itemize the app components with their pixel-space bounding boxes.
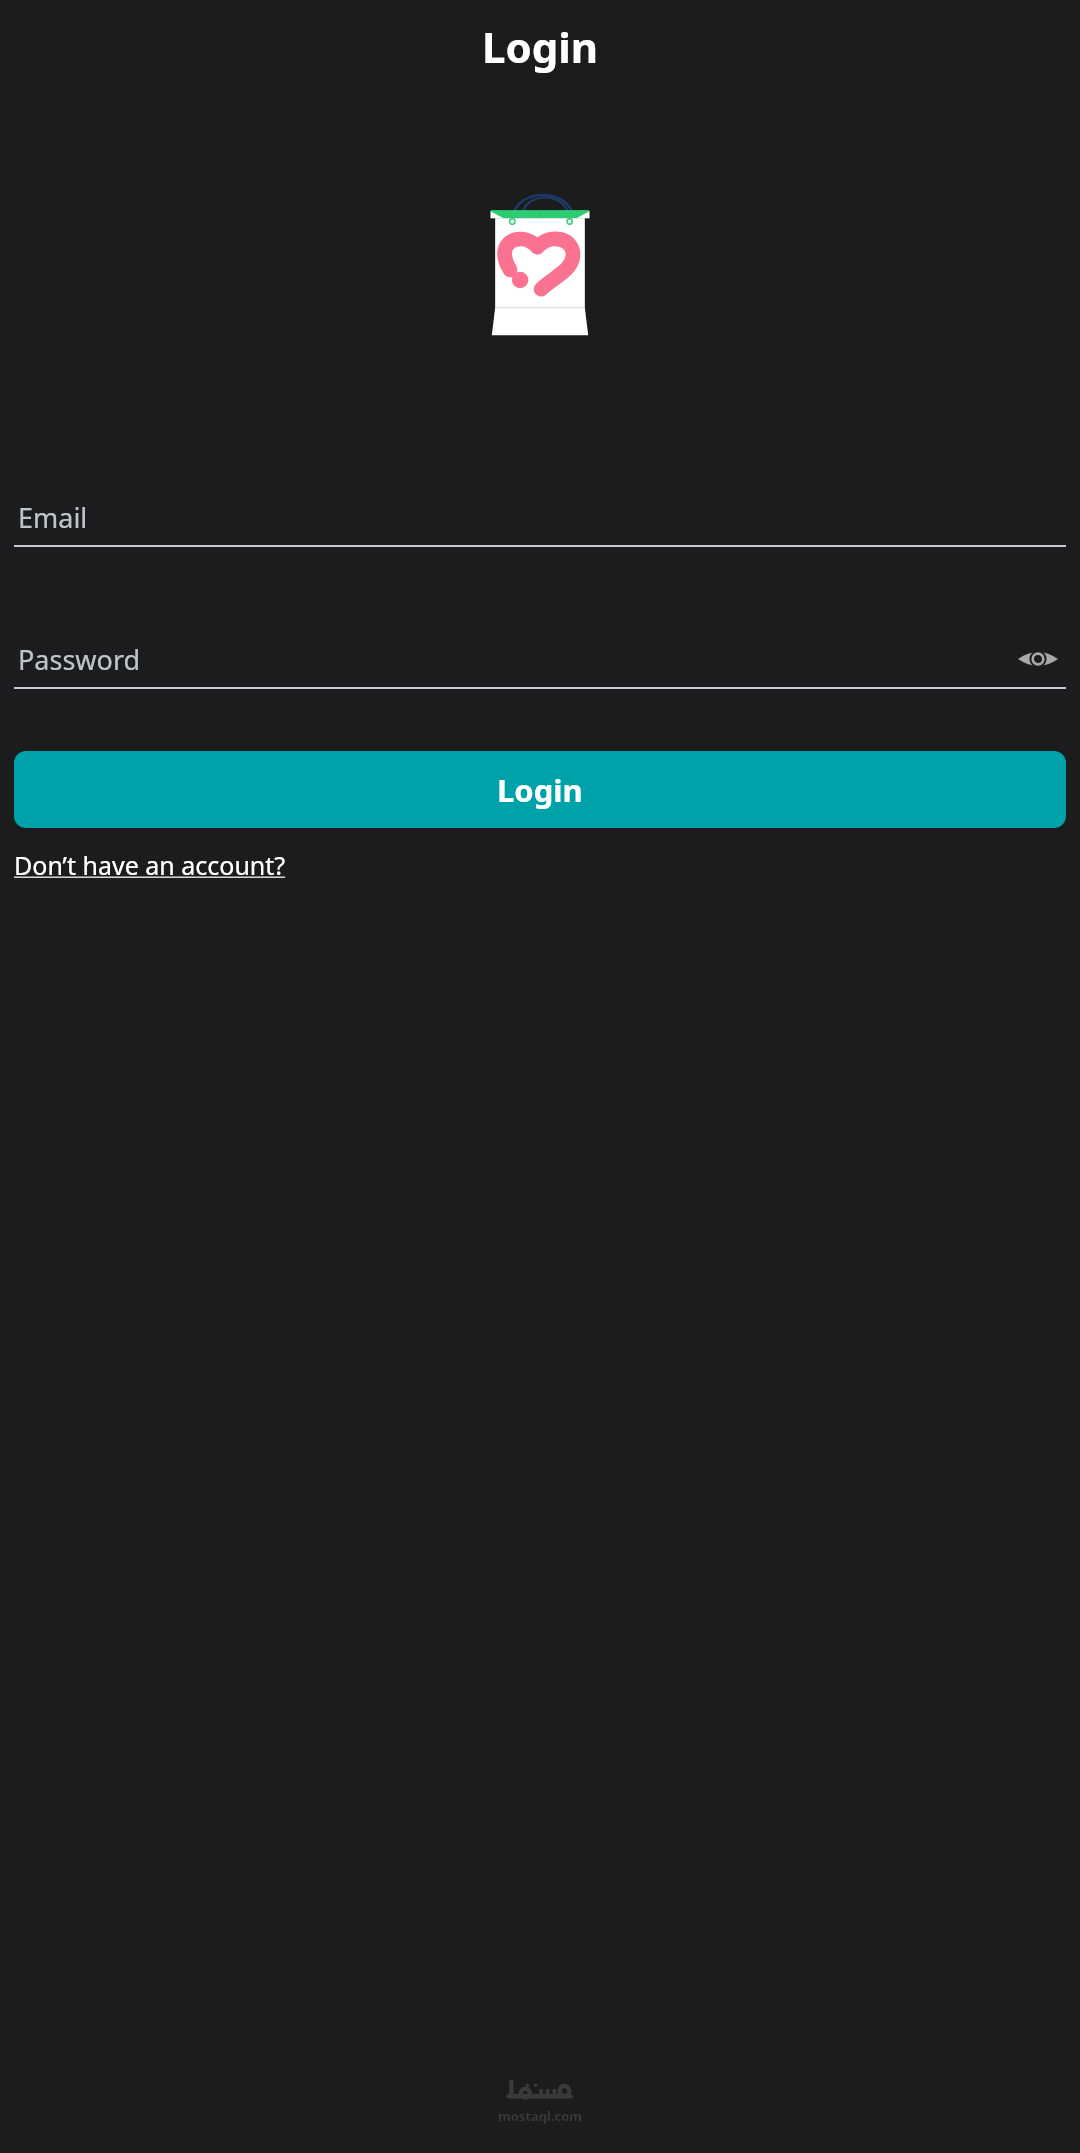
button[interactable]: Show password bbox=[1016, 637, 1060, 681]
staticText: Login bbox=[482, 18, 599, 75]
staticText: Password bbox=[18, 641, 141, 678]
button[interactable]: Don’t have an account? bbox=[14, 844, 286, 886]
staticText: mostaql.com bbox=[498, 2107, 583, 2125]
button[interactable]: Login bbox=[14, 751, 1066, 828]
button[interactable]: Email bbox=[14, 487, 1066, 547]
staticText: Login bbox=[497, 769, 583, 811]
staticText: Don’t have an account? bbox=[14, 848, 286, 882]
button[interactable]: Password bbox=[14, 629, 1066, 689]
staticText: Email bbox=[18, 499, 88, 536]
